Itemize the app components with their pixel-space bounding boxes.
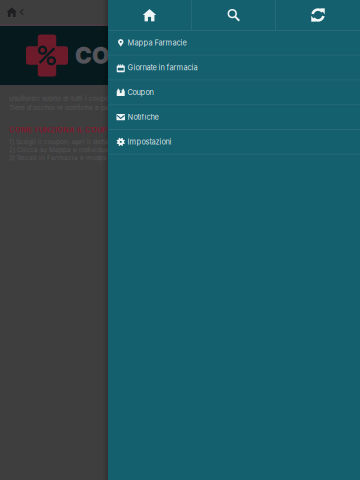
staticText: 2) Clicca su Mappa e individua la Farmac… <box>9 146 198 154</box>
staticText: Tieni d'occhio le notifiche e partecipa … <box>9 104 210 112</box>
staticText: 1) Scegli il coupon, apri il dettaglio e… <box>9 138 198 146</box>
button[interactable]: Impostazioni <box>108 130 360 154</box>
staticText: Usufruisci subito di tutti i coupon del … <box>9 94 204 102</box>
staticText: COUPON <box>75 42 174 69</box>
button[interactable]: Home <box>108 0 191 30</box>
staticText: Coupon <box>127 88 153 97</box>
button[interactable]: Search <box>192 0 275 30</box>
button[interactable]: Home <box>0 0 29 24</box>
staticText: Impostazioni <box>127 137 171 146</box>
staticText: Notifiche <box>127 113 158 122</box>
staticText: 3) Recati in Farmacia e mostra direttame… <box>9 154 195 162</box>
button[interactable]: Refresh <box>276 0 360 30</box>
button[interactable]: Mappa Farmacie <box>108 31 360 55</box>
button[interactable]: Notifiche <box>108 105 360 129</box>
staticText: Giornate in farmacia <box>127 63 197 72</box>
staticText: COME FUNZIONA IL COUPON DIGITALE <box>9 125 155 134</box>
button[interactable]: Coupon <box>108 80 360 104</box>
staticText: Mappa Farmacie <box>127 38 186 47</box>
button[interactable]: Giornate in farmacia <box>108 56 360 80</box>
